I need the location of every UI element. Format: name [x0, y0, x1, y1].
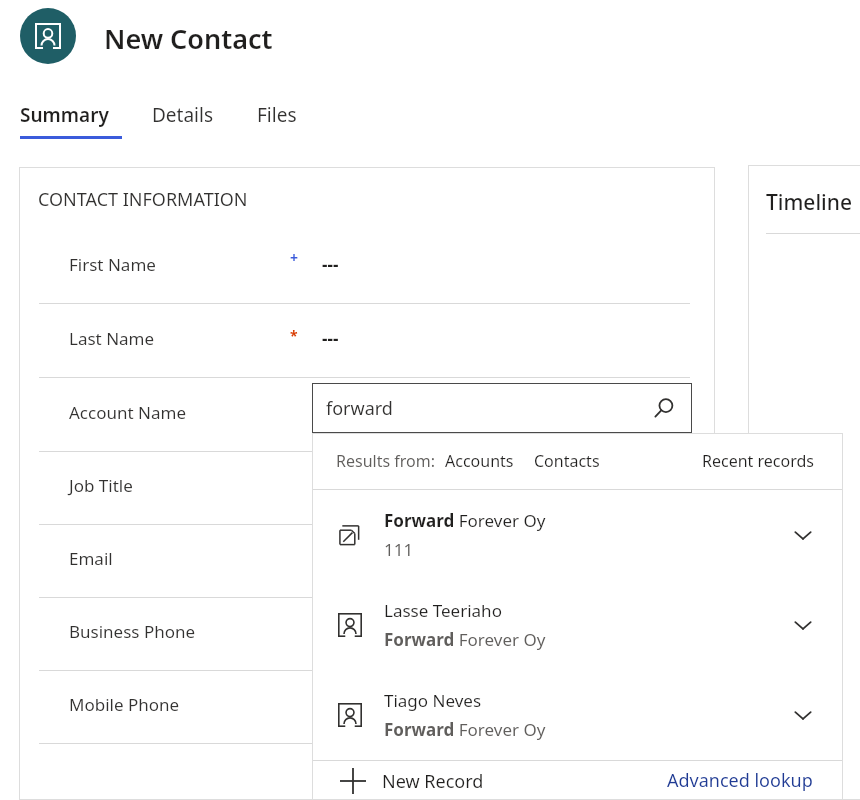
button[interactable]: Summary	[20, 102, 122, 139]
staticText: Mobile Phone	[69, 693, 180, 716]
staticText: Lasse Teeriaho	[384, 599, 502, 622]
staticText: Job Title	[69, 474, 133, 497]
staticText: First Name	[69, 253, 156, 276]
button[interactable]: Expand	[781, 603, 825, 647]
button[interactable]: Expand	[781, 693, 825, 737]
staticText: Contacts	[534, 450, 600, 472]
staticText: Summary	[20, 102, 109, 128]
button[interactable]: Details	[152, 102, 214, 128]
button[interactable]: Forward Forever Oy	[312, 490, 843, 580]
staticText: Forward Forever Oy	[384, 509, 546, 532]
staticText: CONTACT INFORMATION	[38, 187, 248, 212]
staticText: Business Phone	[69, 620, 196, 643]
staticText: ---	[322, 327, 339, 350]
button[interactable]: Expand	[781, 513, 825, 557]
staticText: Tiago Neves	[384, 689, 482, 712]
button[interactable]: Accounts	[445, 450, 514, 472]
staticText: Timeline	[766, 188, 852, 217]
staticText: New Record	[382, 769, 484, 794]
button[interactable]: forward	[312, 383, 692, 433]
button[interactable]: Recent records	[702, 450, 814, 472]
button[interactable]: Search	[646, 390, 682, 426]
staticText: Last Name	[69, 327, 155, 350]
staticText: Results from:	[336, 450, 435, 472]
button[interactable]: Files	[257, 102, 297, 128]
button[interactable]: Advanced lookup	[667, 768, 813, 793]
button[interactable]: New Record	[340, 768, 484, 794]
staticText: *	[290, 326, 298, 345]
staticText: Recent records	[702, 450, 814, 472]
staticText: forward	[326, 396, 393, 421]
staticText: New Contact	[104, 20, 273, 57]
staticText: +	[290, 248, 299, 267]
button[interactable]: Contacts	[534, 450, 600, 472]
staticText: Email	[69, 547, 113, 570]
staticText: 111	[384, 538, 414, 561]
staticText: Account Name	[69, 401, 186, 424]
staticText: Forward Forever Oy	[384, 628, 546, 651]
staticText: Advanced lookup	[667, 768, 813, 793]
button[interactable]: Contact avatar	[20, 8, 76, 64]
staticText: Accounts	[445, 450, 514, 472]
button[interactable]: Lasse Teeriaho	[312, 580, 843, 670]
staticText: Details	[152, 102, 214, 128]
staticText: Forward Forever Oy	[384, 718, 546, 741]
staticText: Files	[257, 102, 297, 128]
button[interactable]: Tiago Neves	[312, 670, 843, 760]
staticText: ---	[322, 253, 339, 276]
